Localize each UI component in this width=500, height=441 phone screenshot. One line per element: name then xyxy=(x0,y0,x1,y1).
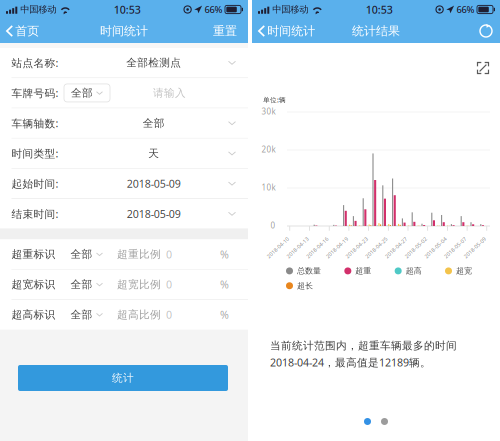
staticText: 当前统计范围内，超重车辆最多的时间 xyxy=(270,339,457,352)
staticText: 超宽比例 xyxy=(117,278,161,291)
button[interactable]: 统计 xyxy=(18,365,228,391)
staticText: 超重 xyxy=(355,266,371,276)
staticText: 超长 xyxy=(297,281,313,291)
button[interactable]: 超宽标识 xyxy=(0,270,248,299)
staticText: 66% xyxy=(456,3,474,16)
staticText: 0 xyxy=(270,220,275,231)
staticText: 2018-04-25 xyxy=(362,244,390,251)
staticText: 重置 xyxy=(213,24,237,38)
staticText: 超宽标识 xyxy=(11,278,55,291)
staticText: 车辆轴数: xyxy=(11,116,58,130)
staticText: 全部 xyxy=(143,117,165,130)
staticText: 时间统计 xyxy=(267,24,315,38)
staticText: 中国移动 xyxy=(272,4,308,15)
staticText: 2018-05-09 xyxy=(127,207,181,221)
staticText: 超高标识 xyxy=(11,308,55,321)
staticText: 20k xyxy=(261,144,275,155)
staticText: 单位:辆 xyxy=(263,95,286,104)
button[interactable]: 全屏 xyxy=(471,56,495,80)
staticText: 2018-05-09 xyxy=(127,176,181,191)
staticText: 2018-05-09 xyxy=(461,244,489,251)
staticText: 2018-04-24，最高值是12189辆。 xyxy=(270,355,431,369)
button[interactable]: 首页 xyxy=(0,19,47,43)
staticText: 全部 xyxy=(70,308,92,321)
button[interactable]: 车牌号码: xyxy=(0,78,248,108)
staticText: 超高比例 xyxy=(117,308,161,321)
staticText: 车牌号码: xyxy=(11,86,58,100)
staticText: 66% xyxy=(204,3,222,16)
staticText: 天 xyxy=(148,147,159,160)
staticText: 10:53 xyxy=(366,2,393,17)
staticText: 2018-04-27 xyxy=(382,244,410,251)
staticText: % xyxy=(220,277,229,292)
staticText: 请输入 xyxy=(153,86,186,99)
button[interactable]: 刷新 xyxy=(472,19,500,43)
staticText: 统计 xyxy=(112,371,134,384)
button[interactable]: 站点名称: xyxy=(0,48,248,77)
staticText: 全部 xyxy=(70,278,92,291)
staticText: 全部检测点 xyxy=(126,56,181,69)
staticText: 超重标识 xyxy=(11,248,55,261)
staticText: 超重比例 xyxy=(117,248,161,261)
staticText: 全部 xyxy=(70,248,92,261)
staticText: 2018-04-23 xyxy=(343,244,371,251)
staticText: 站点名称: xyxy=(11,56,58,70)
staticText: % xyxy=(220,247,229,261)
staticText: 时间类型: xyxy=(11,146,58,160)
staticText: 2018-05-07 xyxy=(441,244,469,251)
staticText: 时间统计 xyxy=(100,24,148,38)
staticText: 2018-04-10 xyxy=(264,244,292,251)
staticText: 超宽 xyxy=(456,266,472,276)
staticText: 0 xyxy=(166,277,172,292)
button[interactable]: 车辆轴数: xyxy=(0,108,248,138)
staticText: 结束时间: xyxy=(11,207,58,221)
button[interactable]: 超高标识 xyxy=(0,300,248,329)
staticText: 2018-04-13 xyxy=(284,244,312,251)
staticText: 首页 xyxy=(15,24,39,38)
staticText: 10k xyxy=(261,182,275,193)
staticText: 30k xyxy=(261,106,275,117)
button[interactable]: 重置 xyxy=(204,19,248,43)
staticText: 2018-04-16 xyxy=(303,244,331,251)
staticText: 总数量 xyxy=(297,266,321,276)
staticText: 起始时间: xyxy=(11,176,58,191)
button[interactable]: 起始时间: xyxy=(0,169,248,198)
button[interactable]: 结束时间: xyxy=(0,199,248,228)
staticText: 中国移动 xyxy=(20,4,56,15)
staticText: 超高 xyxy=(406,266,422,276)
button[interactable]: 时间统计 xyxy=(252,19,323,43)
staticText: 2018-04-19 xyxy=(323,244,351,251)
staticText: 10:53 xyxy=(114,2,141,17)
staticText: 0 xyxy=(166,308,172,322)
button[interactable]: 时间类型: xyxy=(0,139,248,168)
staticText: 2018-05-04 xyxy=(421,244,449,251)
staticText: % xyxy=(220,308,229,322)
staticText: 0 xyxy=(166,247,172,261)
staticText: 统计结果 xyxy=(352,24,400,38)
staticText: 2018-05-02 xyxy=(402,244,430,251)
staticText: 全部 xyxy=(71,86,93,99)
button[interactable]: 超重标识 xyxy=(0,239,248,269)
